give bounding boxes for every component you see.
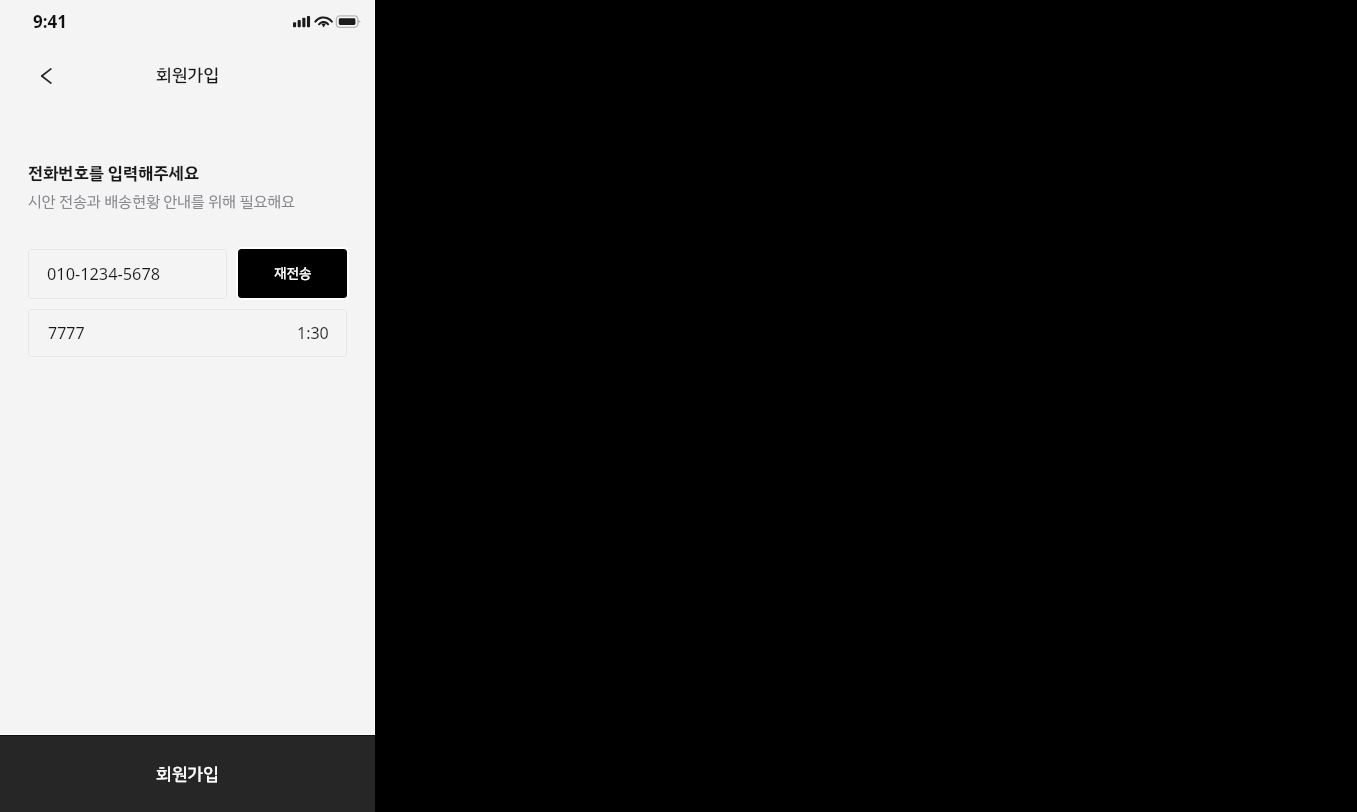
staticText: 010-1234-5678 (47, 263, 161, 285)
button[interactable]: 7777 (28, 309, 347, 357)
staticText: 1:30 (297, 322, 329, 344)
button[interactable]: Back (24, 54, 68, 98)
staticText: 7777 (48, 322, 85, 344)
button[interactable]: 회원가입 (0, 736, 375, 812)
staticText: 9:41 (33, 10, 67, 33)
staticText: 전화번호를 입력해주세요 (28, 161, 199, 186)
button[interactable]: 010-1234-5678 (28, 249, 227, 299)
staticText: 회원가입 (156, 62, 219, 88)
button[interactable]: 재전송 (236, 247, 349, 300)
staticText: 시안 전송과 배송현황 안내를 위해 필요해요 (28, 190, 296, 213)
staticText: 재전송 (274, 263, 312, 284)
staticText: 회원가입 (156, 761, 219, 787)
